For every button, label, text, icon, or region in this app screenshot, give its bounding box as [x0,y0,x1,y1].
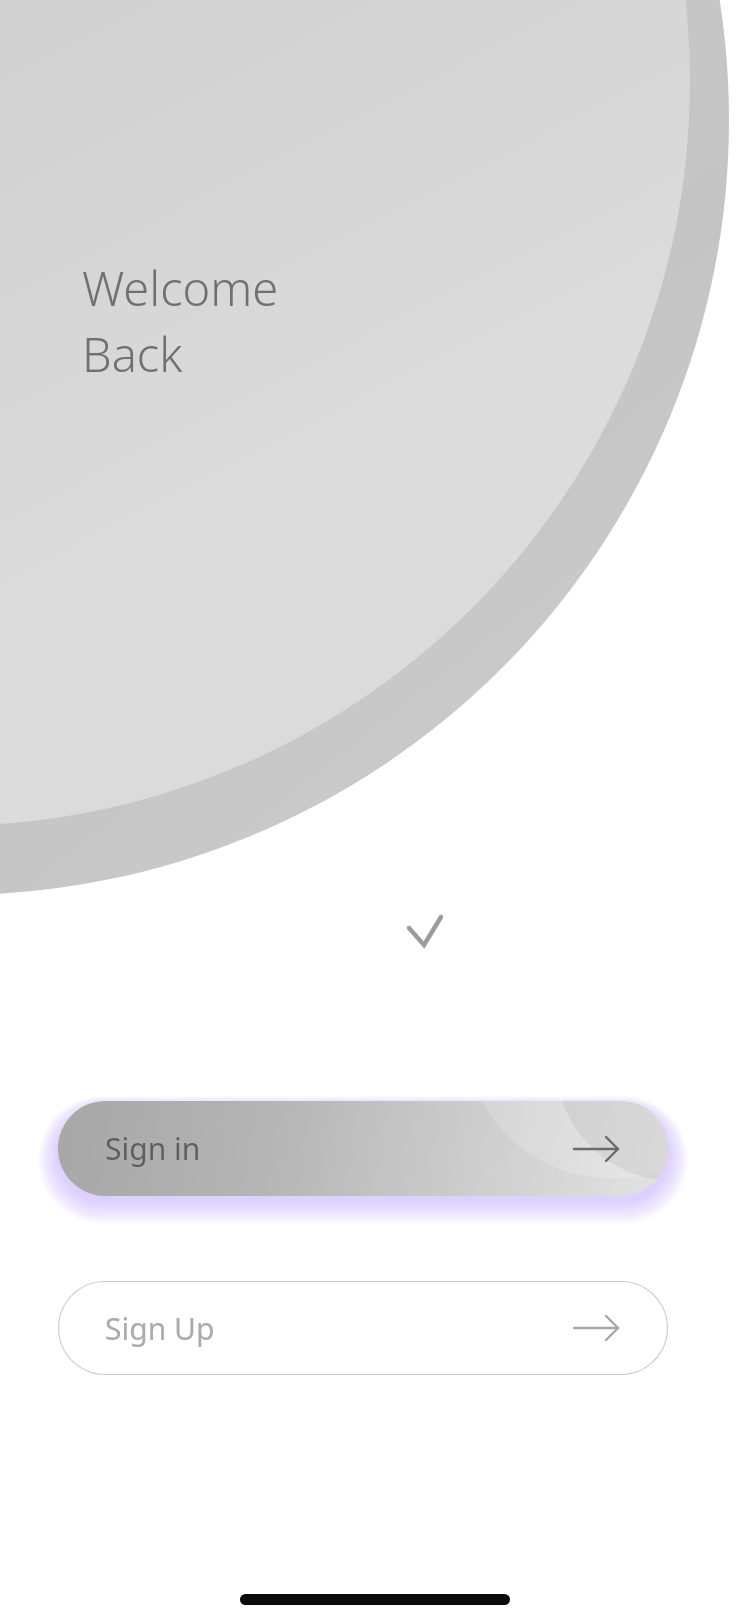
staticText: Sign Up [105,1308,215,1349]
other: Verified [0,0,750,1624]
staticText: Sign in [105,1128,201,1169]
button[interactable]: Sign in [58,1101,668,1196]
button[interactable]: Sign Up [58,1281,668,1375]
staticText: Welcome Back [82,256,279,386]
